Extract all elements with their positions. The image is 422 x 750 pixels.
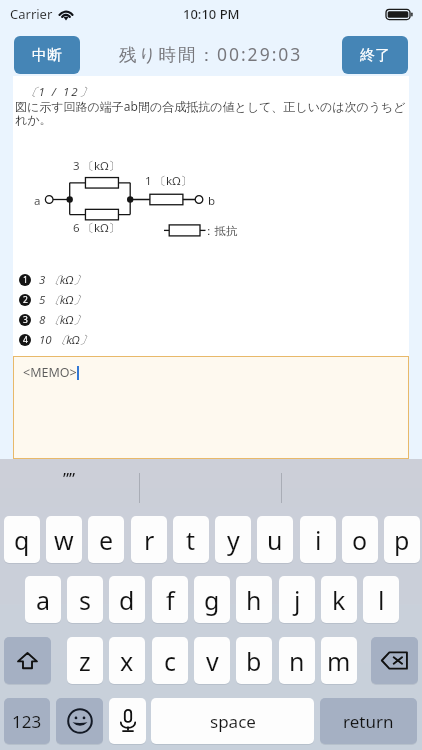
button[interactable]: space bbox=[151, 698, 314, 744]
button[interactable]: w bbox=[46, 516, 82, 563]
button[interactable]: 4 bbox=[19, 330, 139, 350]
staticText: h bbox=[246, 583, 262, 617]
staticText: x bbox=[120, 644, 134, 678]
staticText: ”” bbox=[63, 467, 76, 490]
staticText: r bbox=[144, 523, 155, 557]
staticText: v bbox=[206, 644, 219, 678]
button[interactable]: z bbox=[67, 637, 103, 684]
button[interactable]: u bbox=[257, 516, 293, 563]
staticText: l bbox=[378, 583, 385, 617]
staticText: d bbox=[119, 583, 135, 617]
button[interactable]: s bbox=[67, 576, 103, 623]
button[interactable]: 終了 bbox=[342, 36, 408, 74]
staticText: space bbox=[210, 710, 256, 733]
staticText: k bbox=[332, 583, 346, 617]
button[interactable]: j bbox=[279, 576, 315, 623]
staticText: b bbox=[208, 193, 216, 209]
staticText: u bbox=[267, 523, 283, 557]
staticText: 3 〔kΩ〕 bbox=[73, 158, 120, 174]
button[interactable]: c bbox=[152, 637, 188, 684]
staticText: 図に示す回路の端子ab間の合成抵抗の値として、正しいのは次のうちどれか。 bbox=[15, 98, 408, 128]
button[interactable]: p bbox=[384, 516, 420, 563]
button[interactable]: i bbox=[300, 516, 336, 563]
staticText: 6 〔kΩ〕 bbox=[73, 220, 120, 236]
button[interactable]: b bbox=[236, 637, 272, 684]
button[interactable]: e bbox=[88, 516, 124, 563]
staticText: <MEMO> bbox=[23, 364, 77, 381]
staticText: i bbox=[315, 523, 322, 557]
staticText: b bbox=[246, 644, 262, 678]
staticText: s bbox=[79, 583, 91, 617]
staticText: 残り時間：00:29:03 bbox=[119, 42, 303, 66]
button[interactable]: ”” bbox=[0, 459, 139, 516]
button[interactable]: Backspace bbox=[371, 637, 418, 684]
button[interactable]: h bbox=[236, 576, 272, 623]
staticText: 4 bbox=[23, 334, 28, 346]
staticText: j bbox=[294, 583, 301, 617]
button[interactable]: t bbox=[173, 516, 209, 563]
button[interactable]: l bbox=[363, 576, 399, 623]
button[interactable]: Dictation bbox=[109, 698, 146, 744]
staticText: 中断 bbox=[32, 46, 62, 65]
button[interactable]: q bbox=[4, 516, 40, 563]
staticText: e bbox=[99, 523, 114, 557]
staticText: ：抵抗 bbox=[203, 224, 238, 238]
button[interactable]: 3 bbox=[19, 310, 139, 330]
staticText: Carrier bbox=[10, 5, 53, 23]
staticText: y bbox=[227, 523, 240, 557]
staticText: q bbox=[14, 523, 30, 557]
staticText: 8 〔kΩ〕 bbox=[39, 312, 85, 328]
staticText: t bbox=[186, 523, 196, 557]
staticText: 〔1 / 12〕 bbox=[25, 84, 94, 100]
staticText: 10 〔kΩ〕 bbox=[39, 332, 92, 348]
staticText: a bbox=[34, 193, 41, 209]
staticText: 5 〔kΩ〕 bbox=[39, 292, 85, 308]
button[interactable]: r bbox=[131, 516, 167, 563]
staticText: 3 〔kΩ〕 bbox=[39, 272, 85, 288]
button[interactable]: y bbox=[215, 516, 251, 563]
button[interactable]: 2 bbox=[19, 290, 139, 310]
button[interactable]: o bbox=[342, 516, 378, 563]
staticText: 10:10 PM bbox=[183, 5, 240, 23]
button[interactable]: k bbox=[321, 576, 357, 623]
button[interactable]: f bbox=[152, 576, 188, 623]
staticText: 終了 bbox=[360, 46, 390, 65]
button[interactable]: v bbox=[194, 637, 230, 684]
staticText: p bbox=[394, 523, 410, 557]
button[interactable]: 123 bbox=[4, 698, 50, 744]
button[interactable]: g bbox=[194, 576, 230, 623]
button[interactable]: x bbox=[109, 637, 145, 684]
staticText: return bbox=[343, 710, 394, 733]
button[interactable]: Shift bbox=[4, 637, 51, 684]
button[interactable]: 中断 bbox=[14, 36, 80, 74]
staticText: 1 bbox=[23, 274, 28, 286]
staticText: f bbox=[166, 583, 175, 617]
staticText: z bbox=[79, 644, 91, 678]
staticText: 3 bbox=[23, 314, 28, 326]
button[interactable]: d bbox=[109, 576, 145, 623]
staticText: 123 bbox=[12, 710, 42, 733]
button[interactable]: m bbox=[321, 637, 357, 684]
staticText: g bbox=[204, 583, 220, 617]
button[interactable]: a bbox=[25, 576, 61, 623]
button[interactable]: Emoji keyboard bbox=[56, 698, 103, 744]
button[interactable]: n bbox=[279, 637, 315, 684]
button[interactable]: <MEMO> bbox=[13, 356, 409, 459]
staticText: 2 bbox=[23, 294, 28, 306]
staticText: n bbox=[289, 644, 305, 678]
staticText: m bbox=[327, 644, 351, 678]
staticText: a bbox=[36, 583, 51, 617]
staticText: w bbox=[54, 523, 74, 557]
staticText: c bbox=[164, 644, 177, 678]
staticText: o bbox=[352, 523, 368, 557]
staticText: 1 〔kΩ〕 bbox=[145, 173, 192, 189]
button[interactable]: 1 bbox=[19, 270, 139, 290]
button[interactable]: return bbox=[320, 698, 417, 744]
